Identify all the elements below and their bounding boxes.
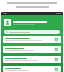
button[interactable]: Open item xyxy=(3,56,61,63)
button[interactable]: Open item xyxy=(54,37,59,42)
button[interactable]: Open item xyxy=(54,47,59,52)
button[interactable]: Search xyxy=(4,30,60,34)
button[interactable]: Open item xyxy=(3,36,61,43)
button[interactable]: Open item xyxy=(54,67,59,72)
button[interactable]: Open item xyxy=(3,46,61,53)
button[interactable]: Open item xyxy=(3,66,61,72)
button[interactable]: Open item xyxy=(54,57,59,62)
button[interactable] xyxy=(1,17,63,28)
